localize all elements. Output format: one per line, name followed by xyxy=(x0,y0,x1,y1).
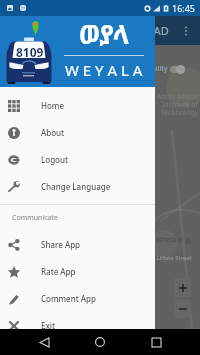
button[interactable]: Recents xyxy=(144,330,168,354)
staticText: Logout xyxy=(41,154,69,165)
staticText: Addis Ababa Institute of Technology xyxy=(0,92,198,117)
button[interactable]: More options xyxy=(178,23,194,39)
staticText: 8109 xyxy=(16,44,44,60)
button[interactable]: Zoom out xyxy=(174,299,191,318)
staticText: Communicate xyxy=(12,213,58,223)
button[interactable]: Back xyxy=(32,330,56,354)
button[interactable]: Availability toggle xyxy=(170,62,185,76)
staticText: Rate App xyxy=(41,266,76,277)
staticText: About xyxy=(41,127,65,138)
staticText: W E Y A L A xyxy=(65,60,143,80)
staticText: Exit xyxy=(41,320,56,331)
staticText: Share App xyxy=(41,239,81,250)
button[interactable]: Share App xyxy=(0,231,155,258)
staticText: Home xyxy=(41,100,65,111)
button[interactable]: Home xyxy=(88,330,112,354)
button[interactable]: Change Language xyxy=(0,173,155,200)
staticText: Change Language xyxy=(41,181,111,192)
button[interactable]: About xyxy=(0,119,155,146)
staticText: WEYALA LOAD xyxy=(94,23,169,38)
staticText: ወያላ xyxy=(79,16,130,51)
button[interactable]: Comment App xyxy=(0,285,155,312)
button[interactable]: Logout xyxy=(0,146,155,173)
staticText: Cathedral xyxy=(151,235,183,245)
button[interactable]: Rate App xyxy=(0,258,155,285)
staticText: Lideta Street xyxy=(0,254,192,262)
staticText: 16:45 xyxy=(172,2,196,14)
button[interactable]: Home xyxy=(0,92,155,119)
button[interactable]: Exit xyxy=(0,312,155,339)
button[interactable]: Zoom in xyxy=(174,278,191,298)
staticText: Availability xyxy=(132,64,168,74)
staticText: Comment App xyxy=(41,293,97,304)
